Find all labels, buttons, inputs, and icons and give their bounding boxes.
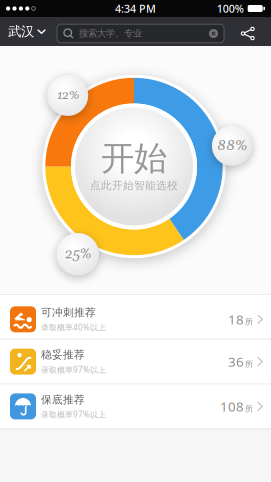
button[interactable]: Search [57, 22, 224, 41]
staticText: 4:34 PM [115, 1, 156, 16]
staticText: 100% [217, 1, 244, 16]
staticText: 108 [220, 397, 244, 415]
staticText: 稳妥推荐 [41, 348, 85, 361]
staticText: 录取概率97%以上 [41, 409, 106, 420]
staticText: 可冲刺推荐 [41, 306, 96, 319]
staticText: 所 [245, 359, 253, 369]
staticText: 武汉 [8, 23, 34, 40]
staticText: 18 [228, 310, 244, 328]
staticText: 点此开始智能选校 [90, 179, 178, 192]
button[interactable]: 可冲刺推荐 [0, 295, 271, 339]
staticText: 开始 [101, 138, 167, 179]
staticText: 36 [228, 353, 244, 370]
staticText: 保底推荐 [41, 393, 85, 406]
button[interactable]: 稳妥推荐 [0, 340, 271, 384]
staticText: 88% [217, 136, 247, 155]
staticText: 所 [245, 317, 253, 327]
staticText: 25% [65, 245, 91, 263]
button[interactable]: 开始 [71, 103, 197, 229]
staticText: 录取概率97%以上 [41, 364, 106, 375]
button[interactable]: Share [240, 24, 271, 39]
staticText: 所 [245, 404, 253, 414]
staticText: 录取概率40%以上 [41, 322, 106, 333]
button[interactable]: 保底推荐 [0, 384, 271, 428]
staticText: 搜索大学、专业 [79, 28, 142, 39]
staticText: 12% [57, 87, 79, 103]
button[interactable]: 武汉 [0, 23, 46, 40]
